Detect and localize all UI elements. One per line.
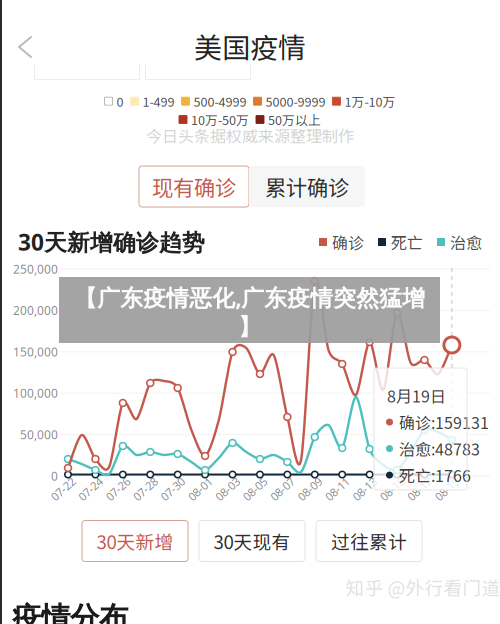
staticText: 疫情分布 [12,599,128,624]
staticText: 美国疫情 [194,26,306,66]
staticText: 治愈 [450,230,482,254]
staticText: 07-22 [49,481,77,497]
staticText: 30天新增确诊趋势 [18,227,205,257]
staticText: 30天新增 [96,527,173,554]
staticText: 【广东疫情恶化,广东疫情突然猛增 】 [74,282,425,341]
staticText: 07-26 [104,481,132,497]
button[interactable]: 30天现有 [199,520,305,561]
staticText: 死亡 [391,230,423,254]
staticText: 确诊:159131 [399,410,489,434]
staticText: 50万以上 [268,110,321,129]
staticText: 08-19 [433,481,461,497]
staticText: 确诊 [332,230,364,254]
button[interactable]: Back [0,0,52,70]
staticText: 知乎 @外行看门道 [345,573,500,600]
staticText: 50,000 [20,426,58,443]
staticText: 07-24 [76,481,104,497]
staticText: 250,000 [13,261,58,277]
staticText: 08-09 [296,481,324,497]
staticText: 08-01 [186,481,214,497]
staticText: 08-15 [378,481,406,497]
staticText: 累计确诊 [265,171,349,202]
staticText: 08-11 [323,481,351,497]
staticText: 200,000 [13,302,58,318]
staticText: 08-07 [268,481,296,497]
staticText: 08-17 [405,481,433,497]
staticText: 08-05 [241,481,269,497]
staticText: 今日头条据权威来源整理制作 [146,124,354,147]
staticText: 治愈:48783 [399,437,480,460]
staticText: 100,000 [13,385,58,401]
staticText: 8月19日 [387,384,446,407]
button[interactable]: 累计确诊 [249,166,365,207]
staticText: 500-4999 [193,92,246,110]
staticText: 0 [116,92,123,110]
button[interactable]: 30天新增 [82,520,188,561]
staticText: 30天现有 [213,527,290,554]
staticText: 现有确诊 [152,171,236,202]
staticText: 07-28 [131,481,159,497]
staticText: 1万-10万 [344,92,395,110]
button[interactable]: 现有确诊 [139,166,249,207]
staticText: 死亡:1766 [399,463,471,487]
button[interactable]: 过往累计 [316,520,422,561]
staticText: 5000-9999 [265,92,325,110]
staticText: 150,000 [13,344,58,360]
staticText: 过往累计 [331,527,407,554]
staticText: 07-30 [159,481,187,497]
staticText: 0 [51,468,58,484]
staticText: 08-13 [351,481,379,497]
staticText: 08-03 [213,481,241,497]
staticText: 10万-50万 [191,110,249,129]
staticText: 1-499 [142,92,174,110]
